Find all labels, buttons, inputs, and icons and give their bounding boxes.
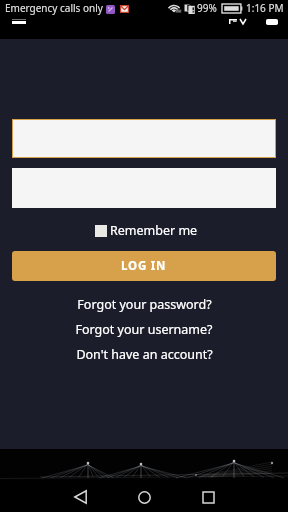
- staticText: LOG IN: [121, 258, 167, 274]
- button[interactable]: Recent apps: [192, 481, 224, 512]
- button[interactable]: LOG IN: [12, 251, 276, 281]
- button[interactable]: Username: [12, 119, 276, 158]
- button[interactable]: Home: [128, 481, 160, 512]
- staticText: Forgot your username?: [75, 321, 213, 338]
- button[interactable]: Forgot your username?: [0, 317, 288, 342]
- staticText: 99%: [197, 1, 217, 15]
- button[interactable]: Remember me: [95, 222, 198, 239]
- button[interactable]: Back: [64, 481, 96, 512]
- staticText: Emergency calls only: [5, 1, 103, 15]
- staticText: Don't have an account?: [76, 346, 213, 363]
- button[interactable]: Forgot your password?: [0, 292, 288, 317]
- staticText: Remember me: [110, 222, 198, 239]
- staticText: Forgot your password?: [77, 296, 212, 313]
- button[interactable]: Don't have an account?: [0, 342, 288, 367]
- staticText: 1:16 PM: [246, 1, 284, 15]
